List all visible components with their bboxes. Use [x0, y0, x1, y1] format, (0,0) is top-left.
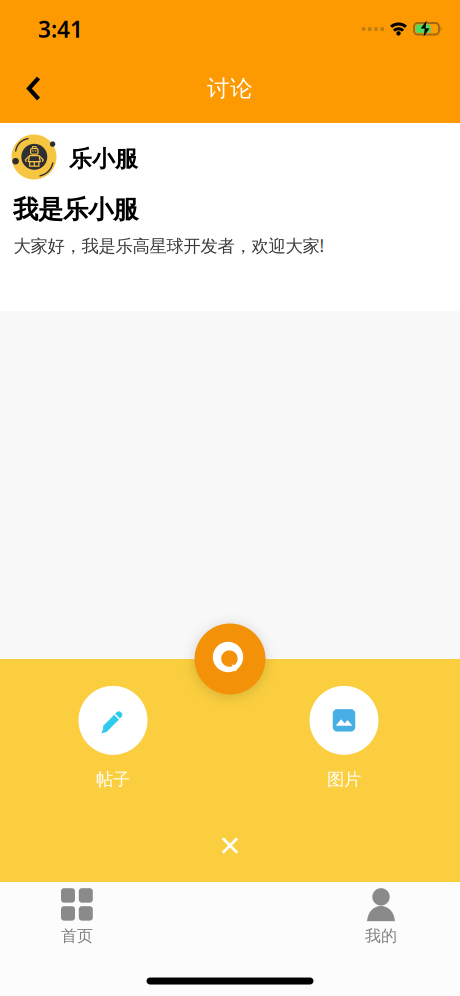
staticText: 首页	[61, 926, 93, 946]
staticText: 3:41	[38, 14, 83, 44]
button[interactable]: 图片	[309, 686, 378, 790]
button[interactable]: 返回	[0, 60, 41, 117]
staticText: 乐小服	[69, 145, 138, 173]
button[interactable]: 首页	[22, 888, 132, 946]
button[interactable]: 我的	[326, 888, 436, 946]
button[interactable]: 关闭	[211, 827, 248, 864]
button[interactable]: 发布	[194, 623, 266, 695]
staticText: 帖子	[96, 769, 130, 790]
staticText: 我是乐小服	[13, 194, 138, 225]
staticText: 图片	[327, 769, 361, 790]
staticText: 我的	[365, 926, 397, 946]
button[interactable]: 帖子	[78, 686, 147, 790]
staticText: 大家好，我是乐高星球开发者，欢迎大家!	[13, 234, 324, 257]
staticText: 讨论	[207, 75, 253, 102]
